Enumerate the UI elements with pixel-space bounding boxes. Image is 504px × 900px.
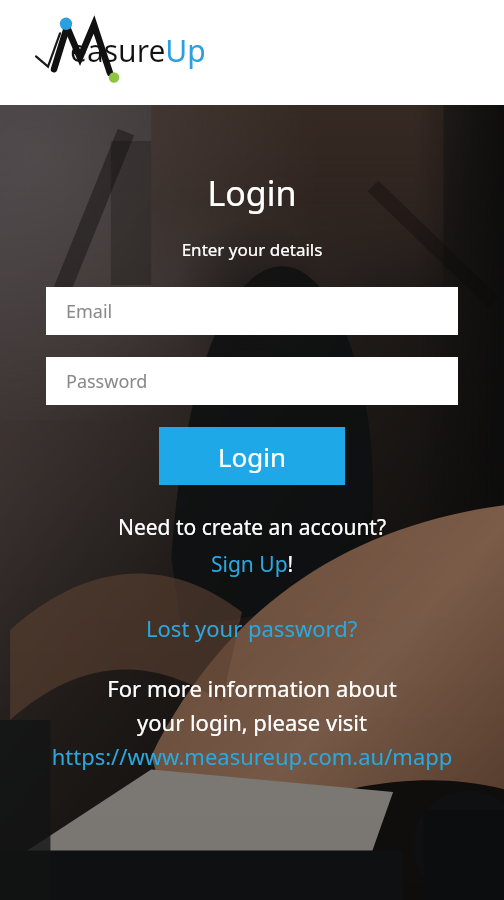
- staticText: Email: [66, 299, 113, 324]
- staticText: Need to create an account?: [0, 513, 504, 542]
- staticText: Sign Up!: [211, 550, 294, 579]
- staticText: For more information about: [0, 673, 504, 703]
- staticText: Password: [66, 369, 148, 394]
- button[interactable]: Sign Up!: [201, 548, 304, 581]
- staticText: easureUp: [70, 30, 206, 71]
- staticText: Login: [218, 439, 287, 474]
- button[interactable]: Email: [46, 287, 458, 335]
- staticText: Login: [0, 170, 504, 216]
- button[interactable]: Password: [46, 357, 458, 405]
- button[interactable]: https://www.measureup.com.au/mapp: [0, 741, 504, 771]
- button[interactable]: Lost your password?: [136, 611, 368, 645]
- staticText: your login, please visit: [0, 707, 504, 737]
- staticText: Enter your details: [0, 238, 504, 261]
- staticText: https://www.measureup.com.au/mapp: [48, 741, 456, 771]
- staticText: Lost your password?: [146, 613, 358, 643]
- button[interactable]: Login: [159, 427, 345, 485]
